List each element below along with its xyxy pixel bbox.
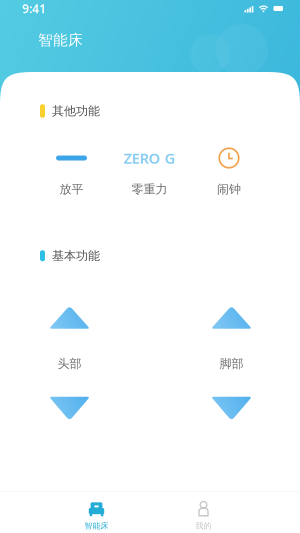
staticText: 脚部 xyxy=(219,356,243,371)
button[interactable] xyxy=(197,293,266,342)
staticText: 9:41 xyxy=(22,0,46,16)
button[interactable] xyxy=(197,384,266,434)
staticText: 智能床 xyxy=(38,31,83,49)
staticText: 放平 xyxy=(59,182,83,197)
button[interactable]: 闹钟 xyxy=(200,147,258,197)
staticText: ZERO G xyxy=(123,148,175,168)
staticText: 零重力 xyxy=(131,182,167,197)
button[interactable]: 放平 xyxy=(42,147,100,197)
button[interactable]: ZERO G xyxy=(120,147,178,197)
staticText: 头部 xyxy=(57,356,81,371)
staticText: 基本功能 xyxy=(52,248,100,263)
staticText: 其他功能 xyxy=(52,104,100,118)
staticText: 我的 xyxy=(195,521,211,531)
staticText: 智能床 xyxy=(84,521,108,531)
button[interactable] xyxy=(35,293,104,342)
button[interactable]: 我的 xyxy=(150,502,257,531)
button[interactable]: 智能床 xyxy=(43,502,150,531)
button[interactable] xyxy=(35,384,104,434)
staticText: 闹钟 xyxy=(217,182,241,197)
